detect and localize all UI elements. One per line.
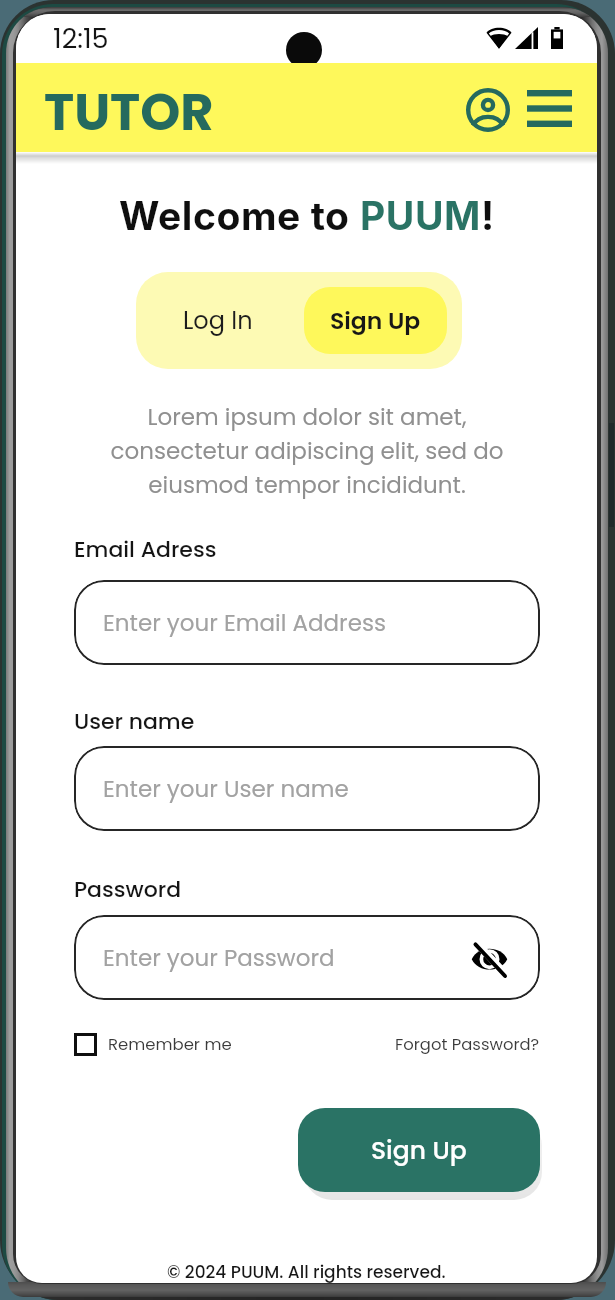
- staticText: Sign Up: [330, 304, 421, 337]
- staticText: PUUM: [360, 192, 481, 239]
- button[interactable]: Toggle password visibility: [467, 936, 511, 980]
- button[interactable]: Sign Up: [304, 287, 447, 354]
- button[interactable]: Enter your Password: [74, 915, 540, 1000]
- staticText: Remember me: [108, 1033, 232, 1056]
- staticText: TUTOR: [44, 76, 214, 147]
- staticText: Lorem ipsum dolor sit amet, consectetur …: [97, 401, 517, 501]
- staticText: User name: [74, 706, 195, 737]
- staticText: © 2024 PUUM. All rights reserved.: [167, 1260, 446, 1283]
- button[interactable]: Menu: [524, 83, 575, 133]
- button[interactable]: Account: [464, 86, 512, 134]
- button[interactable]: Enter your Email Address: [74, 580, 540, 665]
- button[interactable]: Log In: [136, 272, 299, 369]
- staticText: Sign Up: [371, 1133, 467, 1168]
- staticText: Enter your Password: [103, 942, 335, 974]
- staticText: Welcome to: [119, 192, 360, 239]
- button[interactable]: Remember me: [74, 1033, 232, 1056]
- staticText: Email Adress: [74, 534, 217, 565]
- staticText: Password: [74, 874, 182, 905]
- staticText: 12:15: [53, 20, 109, 58]
- button[interactable]: Sign Up: [298, 1108, 540, 1192]
- button[interactable]: Enter your User name: [74, 746, 540, 831]
- staticText: !: [481, 192, 495, 239]
- staticText: Enter your User name: [103, 773, 349, 805]
- staticText: Log In: [183, 304, 253, 338]
- staticText: Enter your Email Address: [103, 607, 386, 639]
- button[interactable]: Forgot Password?: [395, 1033, 540, 1056]
